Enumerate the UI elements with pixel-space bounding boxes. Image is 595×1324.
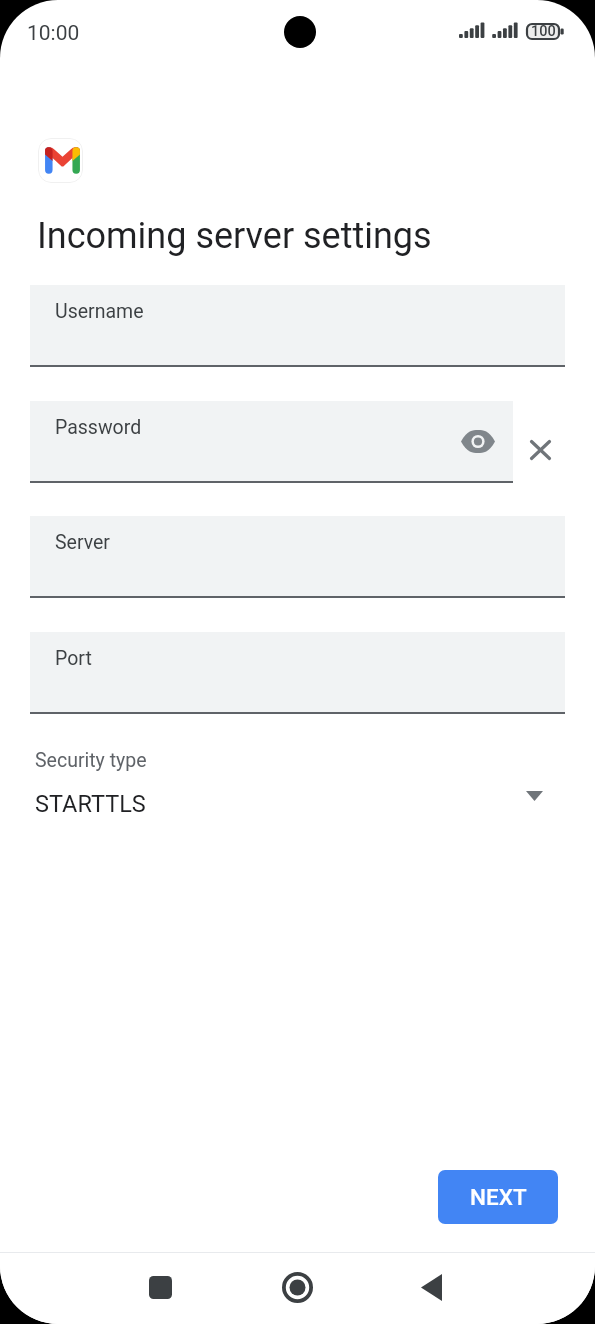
staticText: Username (55, 300, 144, 323)
button[interactable]: NEXT (438, 1170, 558, 1224)
button[interactable]: Back (393, 1253, 469, 1324)
staticText: Incoming server settings (37, 215, 432, 257)
staticText: NEXT (470, 1184, 527, 1210)
button[interactable]: Security type (30, 745, 595, 830)
button[interactable]: Show password (456, 419, 500, 463)
button[interactable]: Server (30, 516, 565, 598)
button[interactable]: Port (30, 632, 565, 714)
button[interactable]: Home (259, 1253, 335, 1324)
staticText: Password (55, 416, 142, 439)
button[interactable]: Password (30, 401, 513, 483)
staticText: 10:00 (27, 21, 80, 46)
button[interactable]: Recent apps (122, 1253, 198, 1324)
staticText: Port (55, 647, 92, 670)
staticText: STARTTLS (35, 790, 146, 818)
staticText: 100 (531, 23, 556, 40)
button[interactable]: Username (30, 285, 565, 367)
staticText: Server (55, 531, 110, 554)
button[interactable]: Clear password (518, 428, 562, 472)
staticText: Security type (35, 749, 147, 772)
